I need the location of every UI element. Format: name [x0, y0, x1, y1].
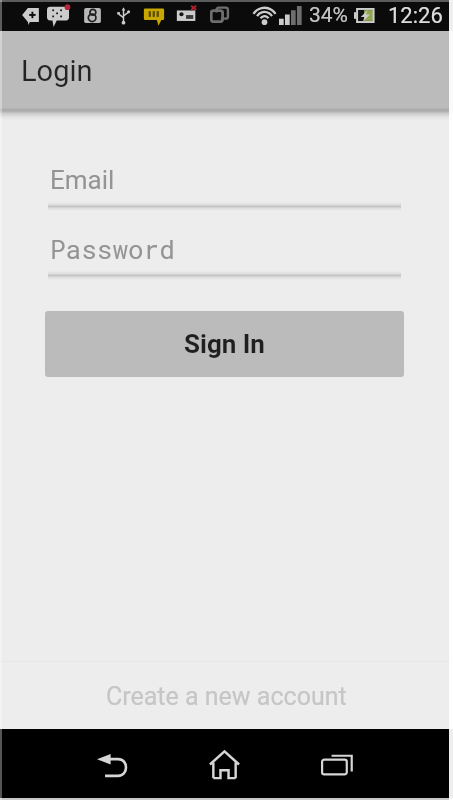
button[interactable]: Back [77, 739, 148, 791]
staticText: Create a new account [106, 682, 347, 711]
staticText: Login [21, 54, 93, 88]
staticText: Password [50, 232, 175, 266]
staticText: 34% [309, 3, 348, 28]
staticText: 12:26 [388, 3, 443, 29]
staticText: Sign In [184, 329, 265, 359]
staticText: Email [50, 165, 115, 195]
button[interactable]: Home [189, 737, 260, 791]
button[interactable]: Email [45, 165, 403, 213]
button[interactable]: Recent apps [301, 738, 372, 791]
button[interactable]: Sign In [45, 311, 404, 377]
button[interactable]: Password [45, 232, 403, 280]
button[interactable]: Create a new account [0, 662, 453, 730]
